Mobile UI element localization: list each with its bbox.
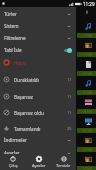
button[interactable]: 24 MB xyxy=(77,71,96,76)
button[interactable]: Tabl İsle xyxy=(0,44,76,56)
button[interactable]: Hepsi xyxy=(0,55,76,70)
button[interactable]: Çıkış xyxy=(0,154,26,170)
staticText: 31 MB xyxy=(83,91,92,95)
staticText: 24 MB xyxy=(83,72,92,76)
staticText: 11 xyxy=(67,94,72,99)
button[interactable]: Türler xyxy=(0,8,76,20)
staticText: 10 MB xyxy=(83,34,92,38)
staticText: Tabl İsle xyxy=(4,47,22,53)
button[interactable]: Filtreleme xyxy=(0,32,76,44)
button[interactable]: 52 MB xyxy=(77,147,96,152)
button[interactable]: Başarısız oldu xyxy=(0,105,76,120)
staticText: Başarısız xyxy=(14,94,33,100)
staticText: 17 MB xyxy=(83,53,92,57)
button[interactable]: İndirmeler xyxy=(0,134,76,146)
staticText: Başarısız oldu xyxy=(14,110,44,116)
staticText: 11 xyxy=(67,110,72,115)
staticText: Filtreleme xyxy=(4,35,26,41)
staticText: 25 xyxy=(67,126,72,131)
staticText: Duraklatıldı xyxy=(14,77,39,83)
staticText: 45 MB xyxy=(83,129,92,133)
button[interactable]: 10 MB xyxy=(77,33,96,38)
staticText: Ayarlar xyxy=(4,150,20,156)
staticText: Tamamlandı xyxy=(14,126,41,132)
staticText: Temizle xyxy=(56,163,71,168)
button[interactable]: 45 MB xyxy=(77,128,96,133)
button[interactable]: Ayarlar xyxy=(26,154,51,170)
staticText: İndirmeler xyxy=(4,137,27,143)
staticText: 11:29 xyxy=(83,1,95,7)
staticText: Türler xyxy=(4,11,17,17)
button[interactable]: Temizle xyxy=(51,154,76,170)
button[interactable]: Ayarlar xyxy=(0,147,76,159)
staticText: Sistem xyxy=(4,23,19,29)
staticText: 38 MB xyxy=(83,110,92,114)
staticText: Çıkış xyxy=(9,163,18,168)
button[interactable]: Sistem xyxy=(0,20,76,32)
button[interactable]: 38 MB xyxy=(77,109,96,114)
button[interactable]: Başarısız xyxy=(0,89,76,104)
button[interactable]: Duraklatıldı xyxy=(0,72,76,87)
staticText: 52 MB xyxy=(83,148,92,152)
staticText: Hepsi xyxy=(14,60,27,66)
button[interactable]: Tamamlandı xyxy=(0,121,76,136)
button[interactable]: 59 MB xyxy=(77,166,96,170)
staticText: Ayarlar xyxy=(32,163,46,168)
staticText: 59 MB xyxy=(83,167,92,170)
staticText: 11 xyxy=(67,77,72,82)
button[interactable]: 17 MB xyxy=(77,52,96,57)
button[interactable]: More options xyxy=(85,10,89,14)
button[interactable]: 31 MB xyxy=(77,90,96,95)
